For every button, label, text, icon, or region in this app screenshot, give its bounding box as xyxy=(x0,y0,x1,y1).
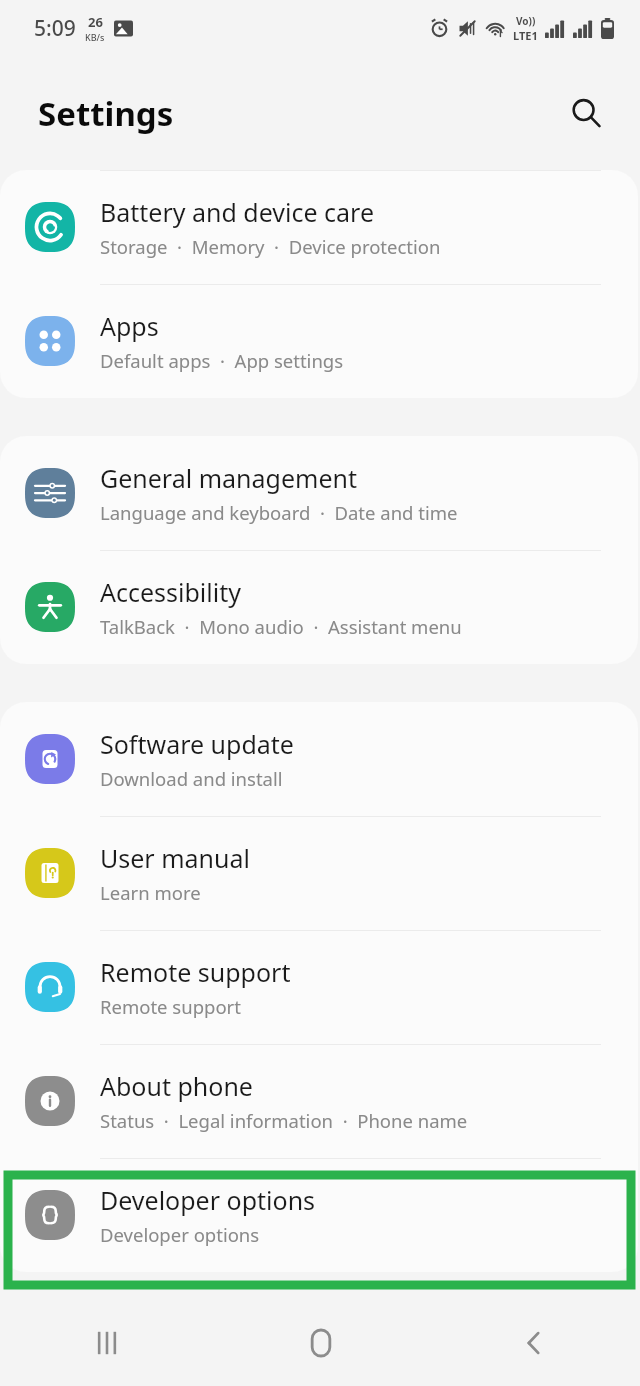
staticText: Battery and device care xyxy=(100,195,375,229)
staticText: KB/s xyxy=(85,31,105,43)
staticText: LTE1 xyxy=(513,28,538,43)
staticText: General management xyxy=(100,461,357,495)
button[interactable]: Home xyxy=(214,1300,427,1386)
staticText: Storage · Memory · Device protection xyxy=(100,234,441,259)
staticText: Remote support xyxy=(100,994,241,1019)
staticText: Software update xyxy=(100,727,294,761)
button[interactable]: About phone xyxy=(0,1044,638,1158)
button[interactable]: Software update xyxy=(0,702,638,816)
button[interactable]: Accessibility xyxy=(0,550,638,664)
staticText: Vo)) xyxy=(516,14,536,28)
button[interactable]: Back xyxy=(427,1300,640,1386)
button[interactable] xyxy=(8,1175,631,1285)
staticText: Default apps · App settings xyxy=(100,348,344,373)
button[interactable]: Remote support xyxy=(0,930,638,1044)
staticText: Learn more xyxy=(100,880,201,905)
button[interactable]: Developer options xyxy=(0,1158,638,1272)
staticText: About phone xyxy=(100,1069,253,1103)
staticText: Status · Legal information · Phone name xyxy=(100,1108,468,1133)
staticText: Apps xyxy=(100,309,159,343)
staticText: 26 xyxy=(88,13,103,31)
button[interactable]: Search xyxy=(558,85,614,141)
staticText: Language and keyboard · Date and time xyxy=(100,500,458,525)
button[interactable]: Recent apps xyxy=(0,1300,214,1386)
staticText: 5:09 xyxy=(34,14,76,43)
button[interactable]: General management xyxy=(0,436,638,550)
staticText: Developer options xyxy=(100,1222,260,1247)
staticText: Download and install xyxy=(100,766,283,791)
staticText: Remote support xyxy=(100,955,291,989)
staticText: TalkBack · Mono audio · Assistant menu xyxy=(100,614,462,639)
button[interactable]: User manual xyxy=(0,816,638,930)
button[interactable]: Battery and device care xyxy=(0,170,638,284)
button[interactable]: Apps xyxy=(0,284,638,398)
staticText: User manual xyxy=(100,841,250,875)
staticText: Settings xyxy=(38,91,174,136)
staticText: Accessibility xyxy=(100,575,241,609)
staticText: Developer options xyxy=(100,1183,316,1217)
